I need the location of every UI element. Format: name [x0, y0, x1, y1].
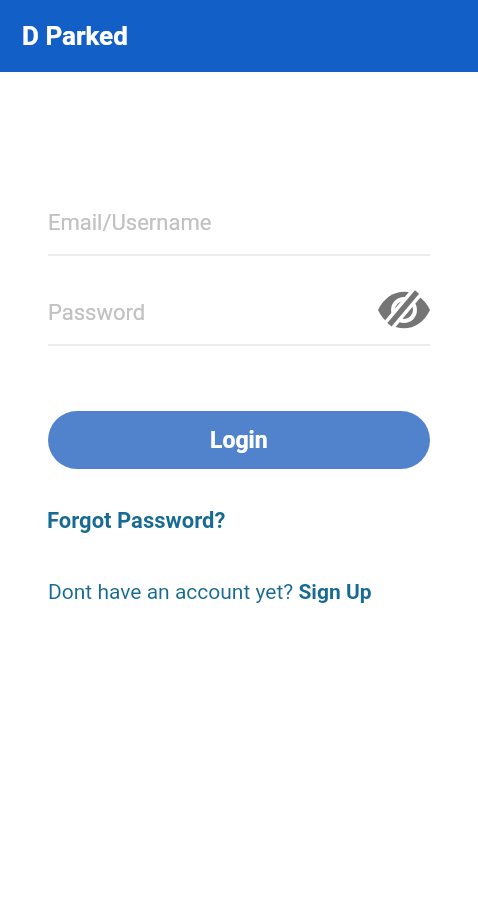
staticText: Dont have an account yet? Sign Up — [48, 580, 372, 605]
button[interactable]: Login — [48, 411, 430, 469]
staticText: Login — [210, 427, 268, 454]
button[interactable]: Email/Username — [48, 192, 430, 254]
button[interactable]: Password — [48, 282, 430, 344]
staticText: D Parked — [22, 21, 128, 51]
button[interactable]: Dont have an account yet? Sign Up — [48, 580, 372, 605]
button[interactable]: Forgot Password? — [47, 508, 226, 534]
staticText: Email/Username — [48, 210, 212, 236]
button[interactable] — [378, 292, 430, 328]
staticText: Password — [48, 300, 146, 326]
staticText: Forgot Password? — [47, 508, 226, 534]
